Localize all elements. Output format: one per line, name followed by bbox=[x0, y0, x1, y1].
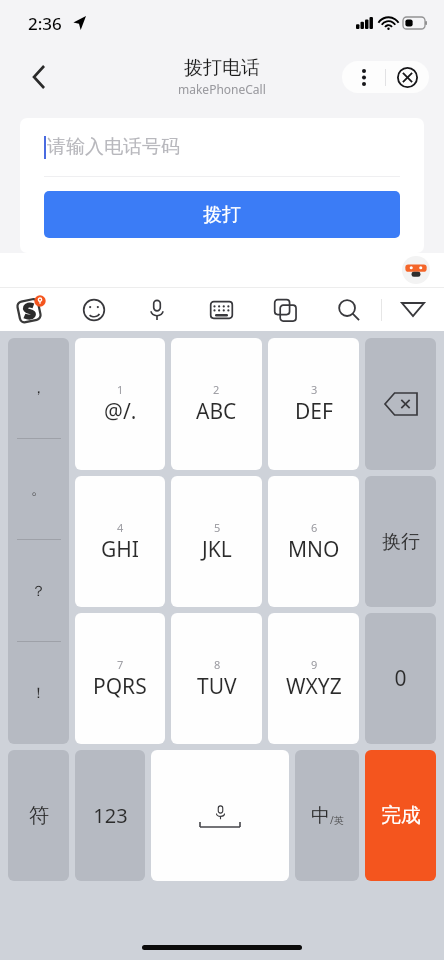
button[interactable]: Space bbox=[151, 750, 289, 881]
button[interactable]: 123 bbox=[75, 750, 145, 881]
staticText: 2:36 bbox=[28, 12, 62, 35]
staticText: ， bbox=[31, 379, 46, 398]
staticText: 2 bbox=[213, 382, 220, 397]
staticText: ！ bbox=[31, 684, 46, 703]
button[interactable]: 0 bbox=[365, 613, 436, 744]
button[interactable]: 3 bbox=[268, 338, 359, 470]
staticText: 请输入电话号码 bbox=[47, 135, 180, 159]
button[interactable]: 5 bbox=[171, 476, 262, 607]
staticText: ABC bbox=[196, 397, 237, 426]
staticText: 5 bbox=[214, 520, 221, 535]
button[interactable]: ， bbox=[8, 338, 69, 744]
button[interactable]: Translate bbox=[253, 288, 317, 331]
button[interactable]: Back bbox=[18, 56, 60, 98]
button[interactable]: 2 bbox=[171, 338, 262, 470]
staticText: GHI bbox=[101, 535, 139, 564]
staticText: 8 bbox=[214, 657, 221, 672]
staticText: MNO bbox=[288, 535, 340, 564]
button[interactable]: Backspace bbox=[365, 338, 436, 470]
button[interactable]: Keyboard layout bbox=[189, 288, 253, 331]
staticText: 完成 bbox=[381, 803, 421, 828]
staticText: TUV bbox=[197, 672, 237, 701]
staticText: 。 bbox=[31, 480, 46, 499]
staticText: 符 bbox=[29, 803, 49, 828]
button[interactable]: Search bbox=[317, 288, 381, 331]
staticText: 6 bbox=[311, 520, 318, 535]
button[interactable]: Sogou input menu bbox=[0, 288, 62, 331]
staticText: 4 bbox=[117, 520, 124, 535]
staticText: DEF bbox=[295, 397, 333, 426]
button[interactable]: 1 bbox=[75, 338, 165, 470]
staticText: 1 bbox=[117, 382, 124, 397]
staticText: @/. bbox=[104, 397, 137, 426]
button[interactable]: 9 bbox=[268, 613, 359, 744]
staticText: 换行 bbox=[382, 530, 420, 554]
staticText: 9 bbox=[311, 657, 318, 672]
button[interactable]: 符 bbox=[8, 750, 69, 881]
staticText: WXYZ bbox=[286, 672, 342, 701]
staticText: makePhoneCall bbox=[178, 81, 266, 97]
staticText: 123 bbox=[93, 802, 128, 829]
staticText: ？ bbox=[31, 582, 46, 601]
button[interactable]: Hide keyboard bbox=[382, 288, 444, 331]
button[interactable]: 4 bbox=[75, 476, 165, 607]
staticText: JKL bbox=[202, 535, 232, 564]
button[interactable]: 6 bbox=[268, 476, 359, 607]
button[interactable]: 7 bbox=[75, 613, 165, 744]
button[interactable]: Voice input bbox=[125, 288, 189, 331]
staticText: 0 bbox=[394, 664, 407, 693]
button[interactable]: 8 bbox=[171, 613, 262, 744]
staticText: 3 bbox=[311, 382, 318, 397]
staticText: 7 bbox=[117, 657, 124, 672]
button[interactable]: 拨打 bbox=[44, 191, 400, 238]
button[interactable]: 换行 bbox=[365, 476, 436, 607]
button[interactable]: Close bbox=[386, 61, 429, 93]
button[interactable]: 完成 bbox=[365, 750, 436, 881]
staticText: PQRS bbox=[93, 672, 147, 701]
staticText: 中 bbox=[311, 804, 330, 828]
staticText: /英 bbox=[330, 813, 344, 827]
button[interactable]: 中 bbox=[295, 750, 359, 881]
staticText: 拨打电话 bbox=[184, 56, 260, 80]
staticText: 拨打 bbox=[203, 203, 241, 227]
button[interactable]: Emoji bbox=[62, 288, 125, 331]
button[interactable]: More bbox=[342, 61, 385, 93]
button[interactable]: 请输入电话号码 bbox=[20, 118, 424, 176]
